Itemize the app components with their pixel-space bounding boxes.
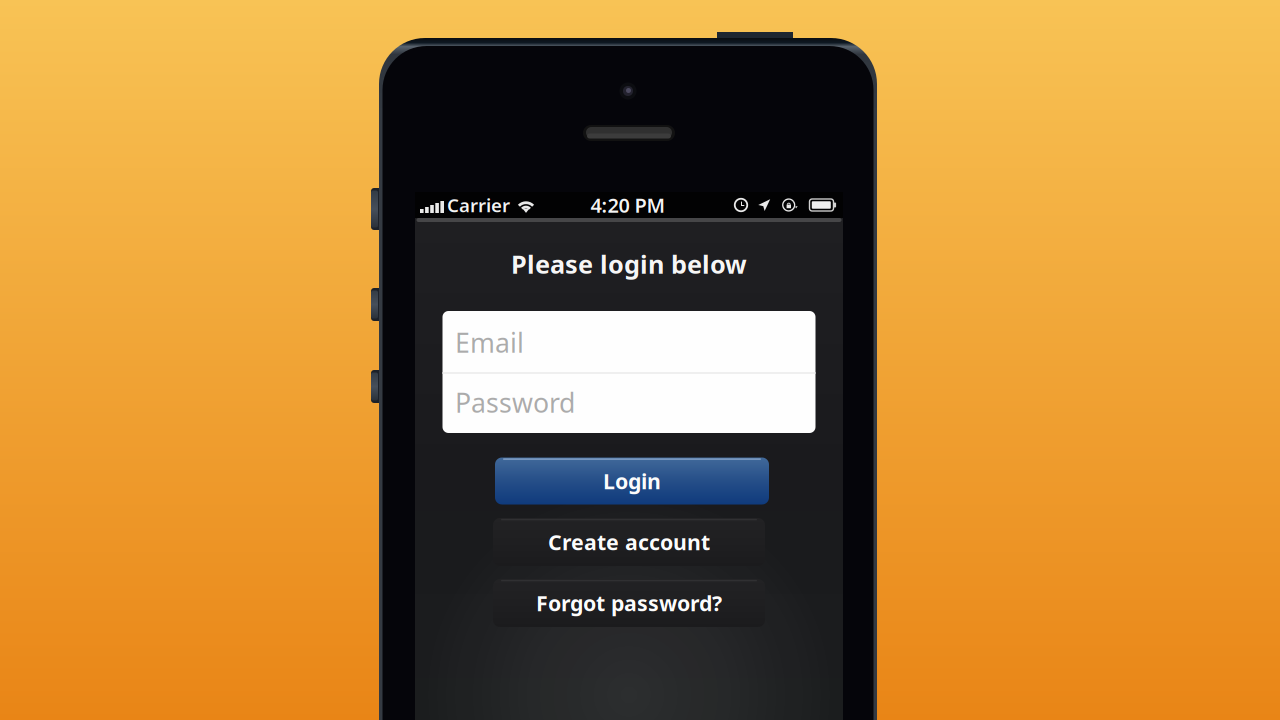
staticText: 4:20 PM <box>590 192 665 218</box>
button[interactable]: Create account <box>493 518 765 566</box>
staticText: Forgot password? <box>536 589 722 617</box>
staticText: Create account <box>548 528 710 556</box>
staticText: Email <box>455 325 524 360</box>
button[interactable]: Forgot password? <box>493 579 765 627</box>
staticText: Password <box>455 385 575 420</box>
button[interactable]: Password <box>442 372 815 433</box>
button[interactable]: Email <box>442 311 815 372</box>
button[interactable]: Login <box>495 457 769 504</box>
staticText: Carrier <box>447 193 510 217</box>
staticText: Please login below <box>511 247 747 281</box>
staticText: Login <box>603 467 661 495</box>
